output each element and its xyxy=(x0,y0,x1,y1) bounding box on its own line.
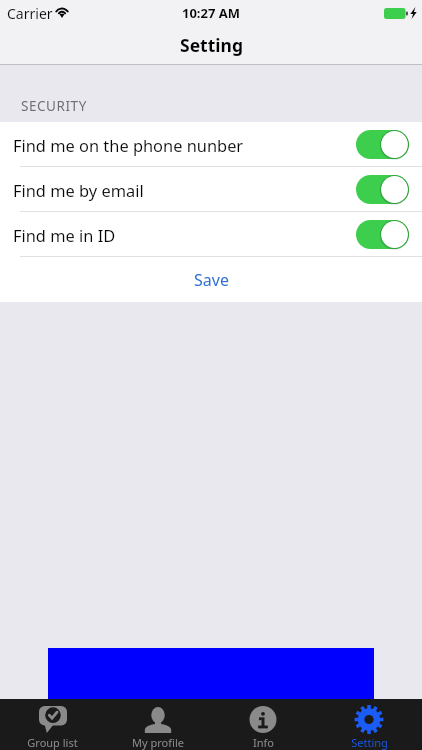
staticText: SECURITY xyxy=(21,97,87,115)
button[interactable]: Toggle switch, on xyxy=(356,130,409,159)
button[interactable]: Group list xyxy=(0,699,105,750)
button[interactable]: Setting xyxy=(316,699,422,750)
button[interactable]: My profile xyxy=(105,699,210,750)
button[interactable]: Find me in ID xyxy=(0,212,422,257)
staticText: Group list xyxy=(27,735,78,750)
button[interactable]: Toggle switch, on xyxy=(356,220,409,249)
button[interactable]: Find me by email xyxy=(0,167,422,212)
staticText: Find me by email xyxy=(13,179,144,201)
button[interactable]: Info xyxy=(210,699,316,750)
button[interactable]: Find me on the phone nunber xyxy=(0,122,422,167)
staticText: Find me on the phone nunber xyxy=(13,134,244,156)
staticText: Setting xyxy=(351,735,388,750)
staticText: My profile xyxy=(132,735,184,750)
staticText: Save xyxy=(194,269,229,291)
button[interactable]: Toggle switch, on xyxy=(356,175,409,204)
button[interactable]: Save xyxy=(0,257,422,302)
staticText: 10:27 AM xyxy=(182,4,241,22)
staticText: Info xyxy=(253,735,274,750)
staticText: Carrier xyxy=(7,4,53,23)
staticText: Setting xyxy=(180,33,243,57)
staticText: Find me in ID xyxy=(13,224,116,246)
